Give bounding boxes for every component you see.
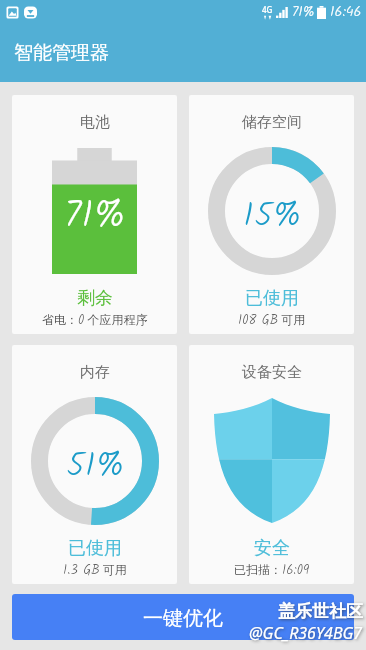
staticText: 已扫描：16:09 xyxy=(234,560,310,581)
staticText: 盖乐世社区 xyxy=(278,601,363,622)
button[interactable]: 电池 xyxy=(12,95,177,334)
button[interactable]: 一键优化 xyxy=(12,594,354,640)
staticText: 储存空间 xyxy=(242,113,302,132)
staticText: 一键优化 xyxy=(143,606,223,631)
staticText: 已使用 xyxy=(68,537,122,560)
other: Download complete xyxy=(24,6,37,19)
staticText: 设备安全 xyxy=(242,363,302,382)
staticText: 智能管理器 xyxy=(14,41,109,65)
staticText: 4G xyxy=(262,4,273,15)
staticText: 剩余 xyxy=(77,287,113,310)
staticText: 省电：0 个应用程序 xyxy=(42,310,148,331)
staticText: 16:46 xyxy=(330,1,362,23)
other: Screenshot captured xyxy=(6,6,19,19)
button[interactable]: 储存空间 xyxy=(189,95,354,334)
staticText: 已使用 xyxy=(245,287,299,310)
staticText: 108 GB 可用 xyxy=(238,310,306,331)
staticText: 71% xyxy=(292,1,315,23)
button[interactable]: 内存 xyxy=(12,345,177,584)
button[interactable]: 设备安全 xyxy=(189,345,354,584)
staticText: 71% xyxy=(64,187,126,248)
staticText: 1.3 GB 可用 xyxy=(63,560,127,581)
staticText: 电池 xyxy=(80,113,110,132)
staticText: 15% xyxy=(243,190,302,244)
staticText: @GC_R36Y4BG7 xyxy=(249,622,363,644)
staticText: 51% xyxy=(66,440,125,494)
staticText: 安全 xyxy=(254,537,290,560)
staticText: 内存 xyxy=(80,363,110,382)
